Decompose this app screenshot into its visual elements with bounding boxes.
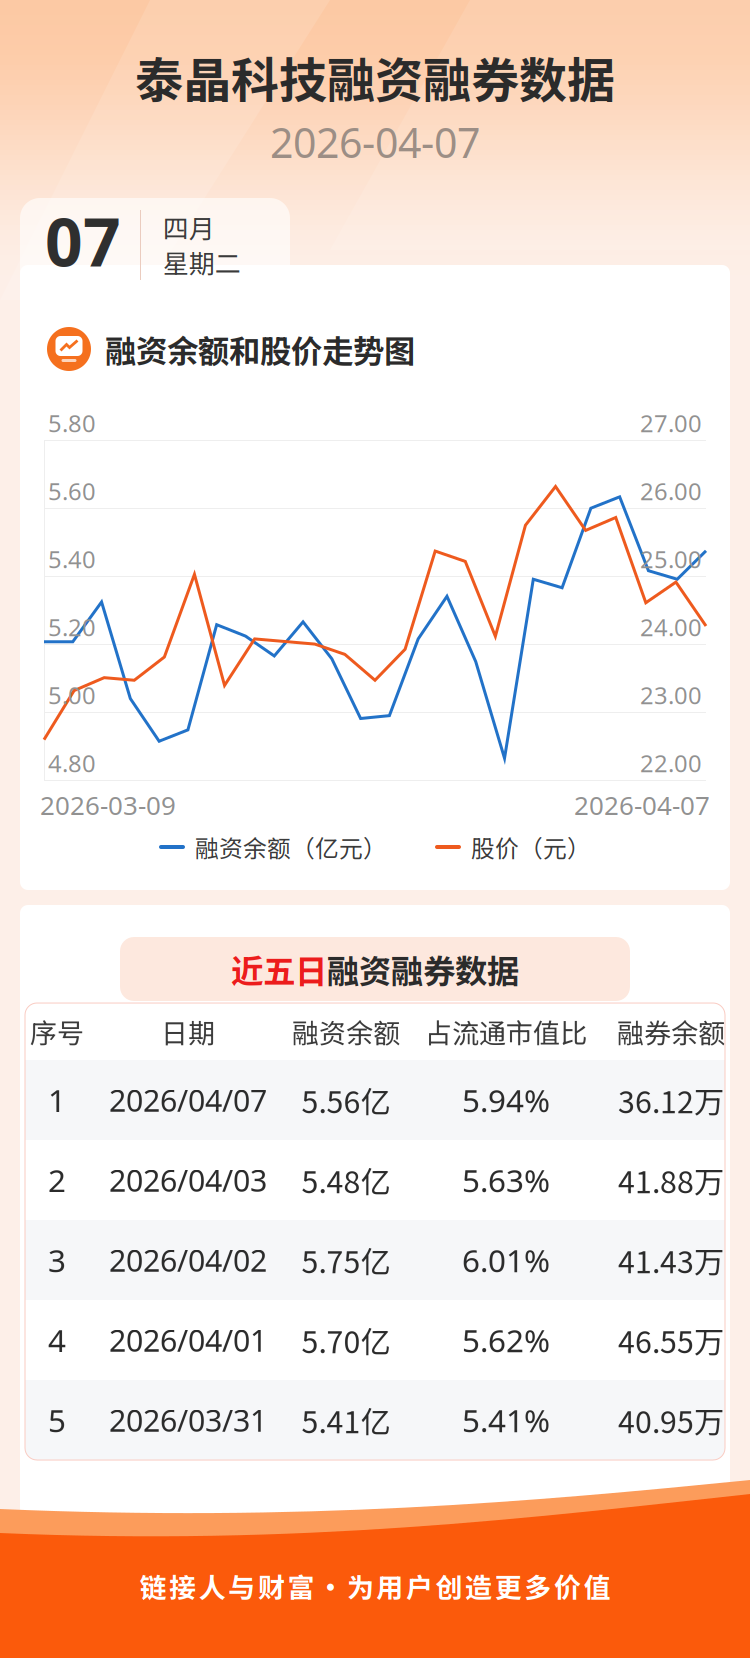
staticText: 近五日 [231,945,327,992]
staticText: 4.80 [48,747,96,779]
staticText: 四月 [163,208,215,246]
staticText: 2026-03-09 [40,787,176,823]
staticText: 融资融券数据 [327,945,519,992]
staticText: 36.12万 [618,1078,724,1122]
staticText: 2026-04-07 [574,787,710,823]
staticText: 融券余额 [617,1012,725,1051]
staticText: 41.88万 [618,1158,724,1202]
staticText: 5.41亿 [301,1398,390,1442]
staticText: 40.95万 [618,1398,724,1442]
staticText: 序号 [30,1012,84,1051]
staticText: 41.43万 [618,1238,724,1282]
staticText: 5.48亿 [301,1158,390,1202]
staticText: 2 [48,1159,66,1201]
staticText: 23.00 [640,679,702,711]
staticText: 5.60 [48,475,96,507]
staticText: 融资余额（亿元） [195,830,387,864]
staticText: 5.00 [48,679,96,711]
staticText: 股价（元） [471,830,591,864]
staticText: 25.00 [640,543,702,575]
staticText: 星期二 [163,243,241,281]
staticText: 1 [48,1079,66,1121]
staticText: 2026/04/03 [109,1159,267,1201]
staticText: 4 [48,1319,66,1361]
staticText: 07 [45,196,121,286]
staticText: 5.75亿 [301,1238,390,1282]
staticText: 5 [48,1399,66,1441]
staticText: 6.01% [462,1239,550,1281]
staticText: 5.56亿 [301,1078,390,1122]
staticText: 2026/04/07 [109,1079,267,1121]
staticText: 5.63% [462,1159,550,1201]
staticText: 占流通市值比 [425,1012,587,1051]
staticText: 2026/04/01 [109,1319,267,1361]
staticText: 2026/03/31 [109,1399,267,1441]
staticText: 27.00 [640,407,702,439]
staticText: 46.55万 [618,1318,724,1362]
staticText: 22.00 [640,747,702,779]
staticText: 5.41% [462,1399,550,1441]
staticText: 5.94% [462,1079,550,1121]
staticText: 5.70亿 [301,1318,390,1362]
staticText: 融资余额和股价走势图 [105,326,415,372]
staticText: 泰晶科技融资融券数据 [135,42,615,112]
staticText: 日期 [161,1012,215,1051]
staticText: 2026-04-07 [270,114,480,170]
staticText: 26.00 [640,475,702,507]
staticText: 链接人与财富·为用户创造更多价值 [139,1566,610,1606]
staticText: 5.20 [48,611,96,643]
staticText: 5.62% [462,1319,550,1361]
staticText: 3 [48,1239,66,1281]
staticText: 5.40 [48,543,96,575]
staticText: 5.80 [48,407,96,439]
staticText: 24.00 [640,611,702,643]
staticText: 2026/04/02 [109,1239,267,1281]
staticText: 融资余额 [292,1012,400,1051]
